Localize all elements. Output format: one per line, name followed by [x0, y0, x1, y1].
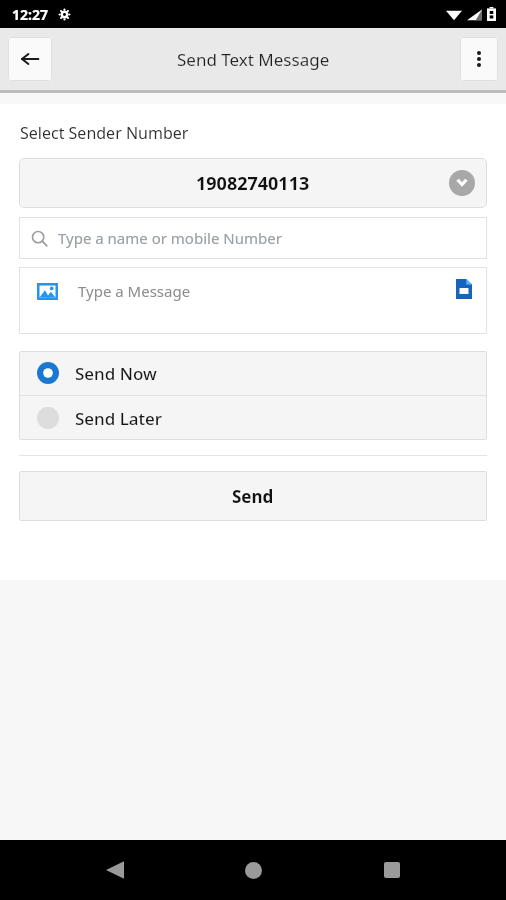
button[interactable]: Recent apps: [368, 846, 416, 894]
button[interactable]: More options: [460, 37, 498, 81]
button[interactable]: Type a name or mobile Number: [19, 217, 487, 259]
button[interactable]: Send Later: [19, 396, 487, 440]
button[interactable]: 19082740113: [19, 158, 487, 208]
button[interactable]: Back: [8, 37, 52, 81]
button[interactable]: Type a Message: [19, 267, 487, 334]
other: Attach document: [456, 279, 472, 299]
staticText: Type a name or mobile Number: [58, 228, 282, 248]
button[interactable]: Send Now: [19, 351, 487, 395]
button[interactable]: Home: [229, 846, 277, 894]
staticText: Select Sender Number: [20, 122, 189, 144]
staticText: Type a Message: [78, 281, 191, 301]
staticText: 19082740113: [196, 171, 310, 196]
staticText: Send Text Message: [177, 48, 330, 71]
button[interactable]: Send: [19, 471, 487, 521]
staticText: Send Later: [75, 407, 162, 430]
button[interactable]: Back: [91, 846, 139, 894]
staticText: Send: [232, 485, 274, 508]
staticText: Send Now: [75, 362, 157, 385]
staticText: 12:27: [12, 5, 48, 24]
